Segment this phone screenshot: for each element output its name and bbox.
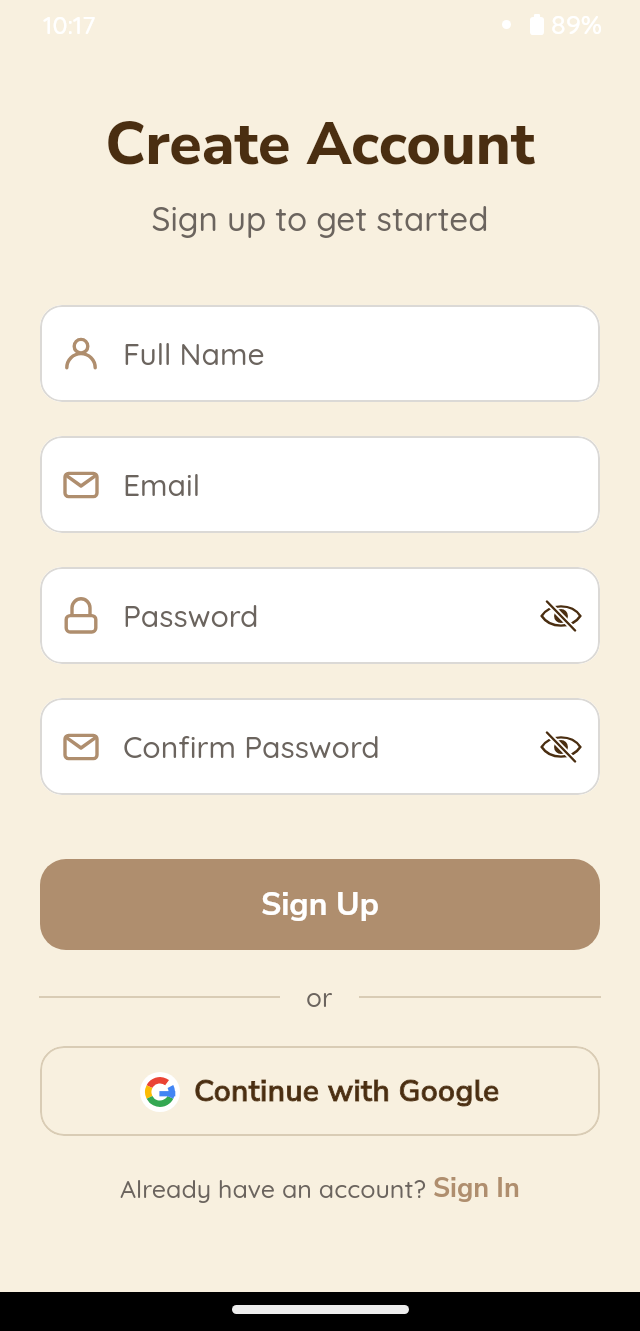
staticText: 10:17 — [43, 9, 96, 40]
button[interactable]: Full Name — [40, 305, 600, 402]
button[interactable]: Show password — [537, 723, 585, 771]
staticText: Email — [123, 466, 200, 504]
staticText: Continue with Google — [194, 1071, 500, 1112]
staticText: Sign Up — [261, 883, 379, 927]
staticText: Sign In — [433, 1170, 520, 1207]
staticText: 89% — [551, 7, 603, 41]
button[interactable]: Email — [40, 436, 600, 533]
button[interactable]: Continue with Google — [40, 1046, 600, 1136]
staticText: Continue with Google — [194, 1071, 500, 1112]
staticText: Already have an account? — [120, 1173, 433, 1204]
staticText: Password — [123, 597, 259, 635]
button[interactable]: Confirm Password — [40, 698, 600, 795]
button[interactable]: Show password — [537, 592, 585, 640]
button[interactable]: Sign In — [433, 1170, 520, 1207]
staticText: or — [306, 981, 333, 1014]
button[interactable]: Sign Up — [40, 859, 600, 950]
staticText: Confirm Password — [123, 728, 380, 766]
staticText: Create Account — [0, 104, 640, 184]
staticText: Sign up to get started — [0, 198, 640, 239]
staticText: Full Name — [123, 335, 265, 373]
button[interactable]: Password — [40, 567, 600, 664]
